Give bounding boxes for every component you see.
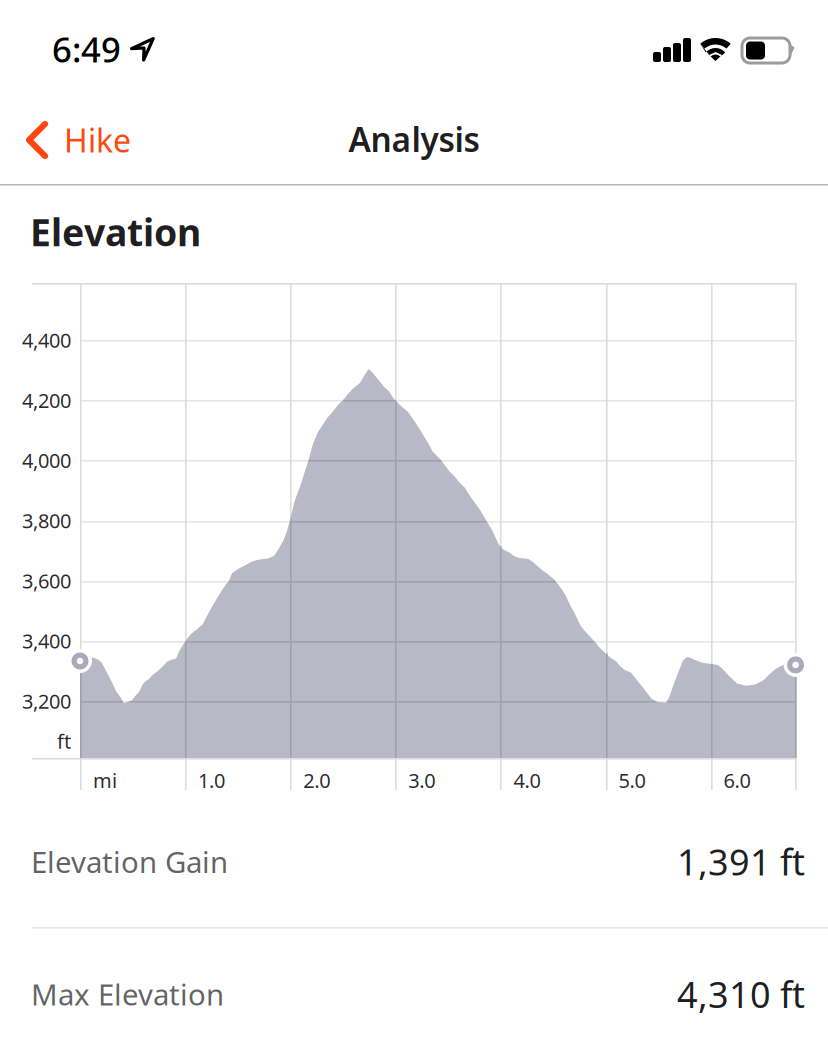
staticText: 3,200	[22, 688, 71, 714]
staticText: 4,400	[22, 327, 71, 353]
staticText: 3,800	[22, 507, 71, 534]
staticText: 6.0	[724, 767, 751, 794]
staticText: 4,000	[22, 447, 71, 474]
button[interactable]: Elevation Gain	[0, 796, 828, 927]
staticText: ft	[57, 728, 71, 754]
staticText: 3.0	[408, 767, 435, 794]
staticText: 5.0	[618, 767, 645, 794]
button[interactable]: Hike	[0, 88, 170, 184]
staticText: 1,391 ft	[677, 838, 805, 885]
button[interactable]: Max Elevation	[0, 929, 828, 1050]
staticText: mi	[93, 767, 117, 794]
staticText: 3,600	[22, 567, 71, 594]
staticText: 4,200	[22, 387, 71, 413]
staticText: Max Elevation	[31, 975, 224, 1014]
staticText: Analysis	[348, 117, 479, 161]
staticText: 6:49	[52, 26, 121, 72]
staticText: 2.0	[303, 767, 330, 794]
staticText: 4,310 ft	[677, 970, 805, 1018]
staticText: 4.0	[513, 767, 540, 794]
staticText: 3,400	[22, 628, 71, 654]
staticText: Elevation	[30, 207, 201, 257]
staticText: 1.0	[198, 767, 225, 794]
staticText: Elevation Gain	[31, 842, 228, 881]
staticText: Hike	[64, 119, 131, 161]
